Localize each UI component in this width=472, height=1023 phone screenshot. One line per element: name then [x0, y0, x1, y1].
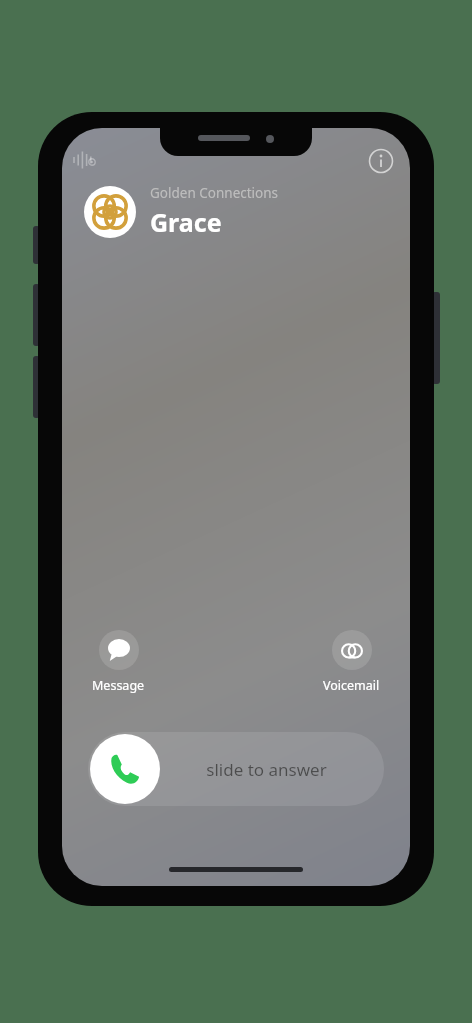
- button[interactable]: Call info: [368, 148, 394, 174]
- button[interactable]: slide to answer: [88, 732, 384, 806]
- staticText: Golden Connections: [150, 184, 279, 202]
- button[interactable]: Voicemail: [321, 628, 382, 696]
- staticText: slide to answer: [206, 758, 327, 781]
- staticText: Message: [92, 677, 145, 694]
- staticText: Voicemail: [323, 677, 380, 694]
- button[interactable]: Message: [90, 628, 147, 696]
- button[interactable]: Answer call: [90, 734, 160, 804]
- staticText: Grace: [150, 205, 222, 239]
